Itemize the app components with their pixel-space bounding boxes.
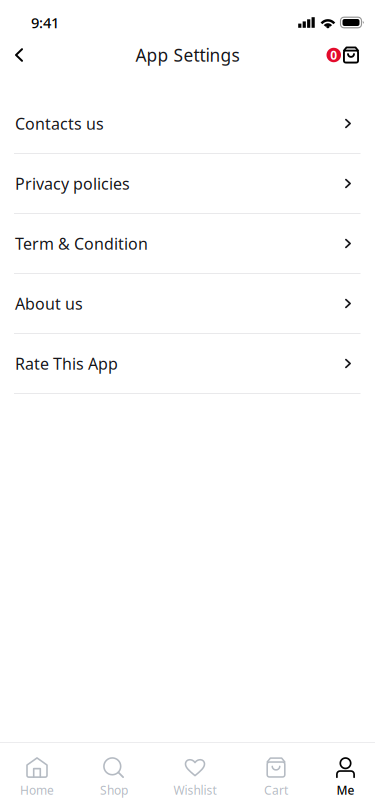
staticText: 0	[330, 47, 337, 63]
staticText: Contacts us	[15, 113, 104, 134]
staticText: App Settings	[135, 43, 239, 66]
button[interactable]: Me	[316, 743, 375, 812]
button[interactable]: Rate This App	[0, 334, 375, 394]
staticText: Home	[20, 782, 54, 798]
staticText: Wishlist	[173, 782, 216, 798]
staticText: Me	[336, 782, 354, 798]
staticText: Shop	[100, 782, 128, 798]
button[interactable]: Contacts us	[0, 94, 375, 154]
button[interactable]: About us	[0, 274, 375, 334]
button[interactable]: Term & Condition	[0, 214, 375, 274]
button[interactable]: Cart	[236, 743, 316, 812]
button[interactable]: Cart	[326, 36, 359, 74]
staticText: Privacy policies	[15, 173, 130, 194]
button[interactable]: Wishlist	[154, 743, 236, 812]
button[interactable]: Shop	[74, 743, 154, 812]
staticText: Rate This App	[15, 353, 118, 374]
staticText: Term & Condition	[15, 233, 148, 254]
staticText: About us	[15, 293, 83, 314]
staticText: 9:41	[31, 13, 59, 32]
button[interactable]: Home	[0, 743, 74, 812]
button[interactable]: Privacy policies	[0, 154, 375, 214]
button[interactable]: Back	[0, 36, 38, 74]
staticText: Cart	[264, 782, 288, 798]
